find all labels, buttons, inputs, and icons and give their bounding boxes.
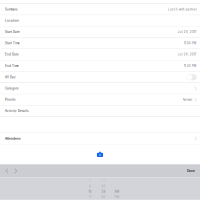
button[interactable]: End Date [0, 49, 200, 60]
staticText: 11:00 PM [184, 42, 197, 45]
staticText: Activity Details [5, 109, 28, 113]
staticText: Start Time [5, 42, 20, 45]
staticText: 9 [89, 185, 91, 188]
button[interactable]: Location [0, 15, 200, 26]
button[interactable]: Next field [11, 164, 20, 177]
button[interactable]: End Time [0, 60, 200, 72]
staticText: Start Date [5, 30, 20, 34]
staticText: Summary [5, 8, 18, 11]
staticText: Normal [183, 98, 193, 101]
staticText: Category [5, 87, 19, 90]
staticText: Jul 24, 2017 [178, 53, 197, 56]
button[interactable]: Attendees [0, 133, 200, 144]
staticText: 10 [88, 190, 91, 193]
staticText: Location [5, 19, 19, 22]
staticText: Attendees [5, 137, 21, 140]
staticText: Jul 24, 2017 [178, 30, 197, 34]
staticText: 58 [101, 185, 105, 188]
staticText: End Time [5, 64, 19, 68]
button[interactable]: Summary [0, 4, 200, 15]
button[interactable]: Category [0, 83, 200, 94]
staticText: PM [114, 195, 119, 199]
button[interactable]: All Day [0, 72, 200, 83]
button[interactable]: Start Time [0, 38, 200, 49]
staticText: Lunch with partner [168, 8, 197, 11]
button[interactable]: Start Date [0, 26, 200, 38]
staticText: Done [187, 169, 195, 173]
staticText: AM [114, 190, 119, 193]
button[interactable]: Priority [0, 94, 200, 106]
staticText: Priority [5, 98, 16, 101]
staticText: 11 [89, 195, 91, 199]
staticText: 00 [101, 195, 105, 199]
button[interactable]: Add photo [97, 152, 103, 157]
staticText: 8 [89, 179, 91, 183]
button[interactable]: Previous field [0, 164, 11, 177]
button[interactable]: Activity Details [0, 106, 200, 117]
staticText: 57 [101, 179, 105, 183]
staticText: 11:30 PM [184, 64, 197, 68]
staticText: 59 [101, 190, 105, 193]
button[interactable]: Done [187, 164, 200, 177]
staticText: End Date [5, 53, 19, 56]
staticText: All Day [5, 75, 16, 79]
